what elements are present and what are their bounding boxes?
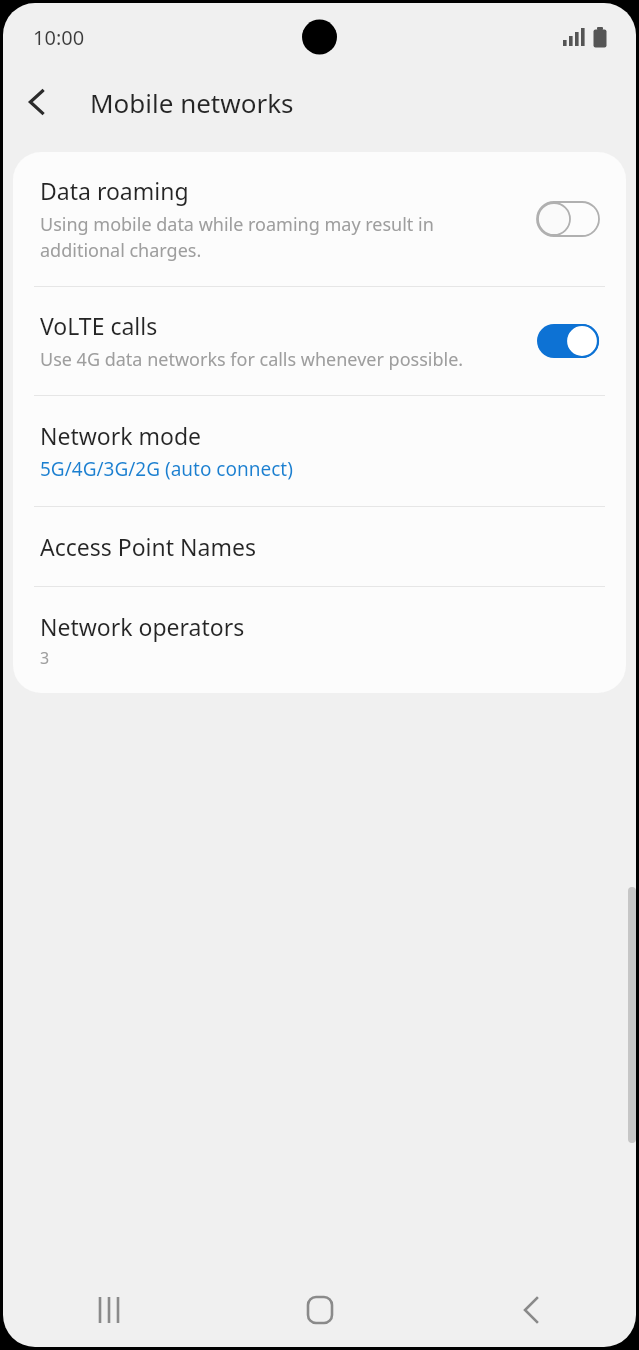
- button[interactable]: Recents: [3, 1273, 214, 1347]
- staticText: Access Point Names: [40, 531, 256, 562]
- button[interactable]: Data roaming: [13, 152, 626, 286]
- button[interactable]: Network mode: [13, 396, 626, 506]
- staticText: 10:00: [33, 24, 85, 51]
- staticText: Use 4G data networks for calls whenever …: [40, 347, 464, 372]
- button[interactable]: Network operators: [13, 587, 626, 693]
- button[interactable]: VoLTE calls: [13, 287, 626, 395]
- staticText: Mobile networks: [90, 85, 294, 120]
- button[interactable]: Home: [214, 1273, 425, 1347]
- button[interactable]: Access Point Names: [13, 507, 626, 586]
- staticText: VoLTE calls: [40, 310, 158, 341]
- button[interactable]: Back: [425, 1273, 636, 1347]
- staticText: Network operators: [40, 611, 245, 642]
- button[interactable]: Toggle on: [535, 323, 601, 359]
- staticText: 5G/4G/3G/2G (auto connect): [40, 456, 293, 482]
- button[interactable]: Back: [3, 71, 65, 133]
- staticText: 3: [40, 647, 50, 669]
- staticText: Network mode: [40, 420, 202, 451]
- staticText: Using mobile data while roaming may resu…: [40, 212, 434, 263]
- button[interactable]: Toggle off: [535, 201, 601, 237]
- staticText: Data roaming: [40, 175, 189, 206]
